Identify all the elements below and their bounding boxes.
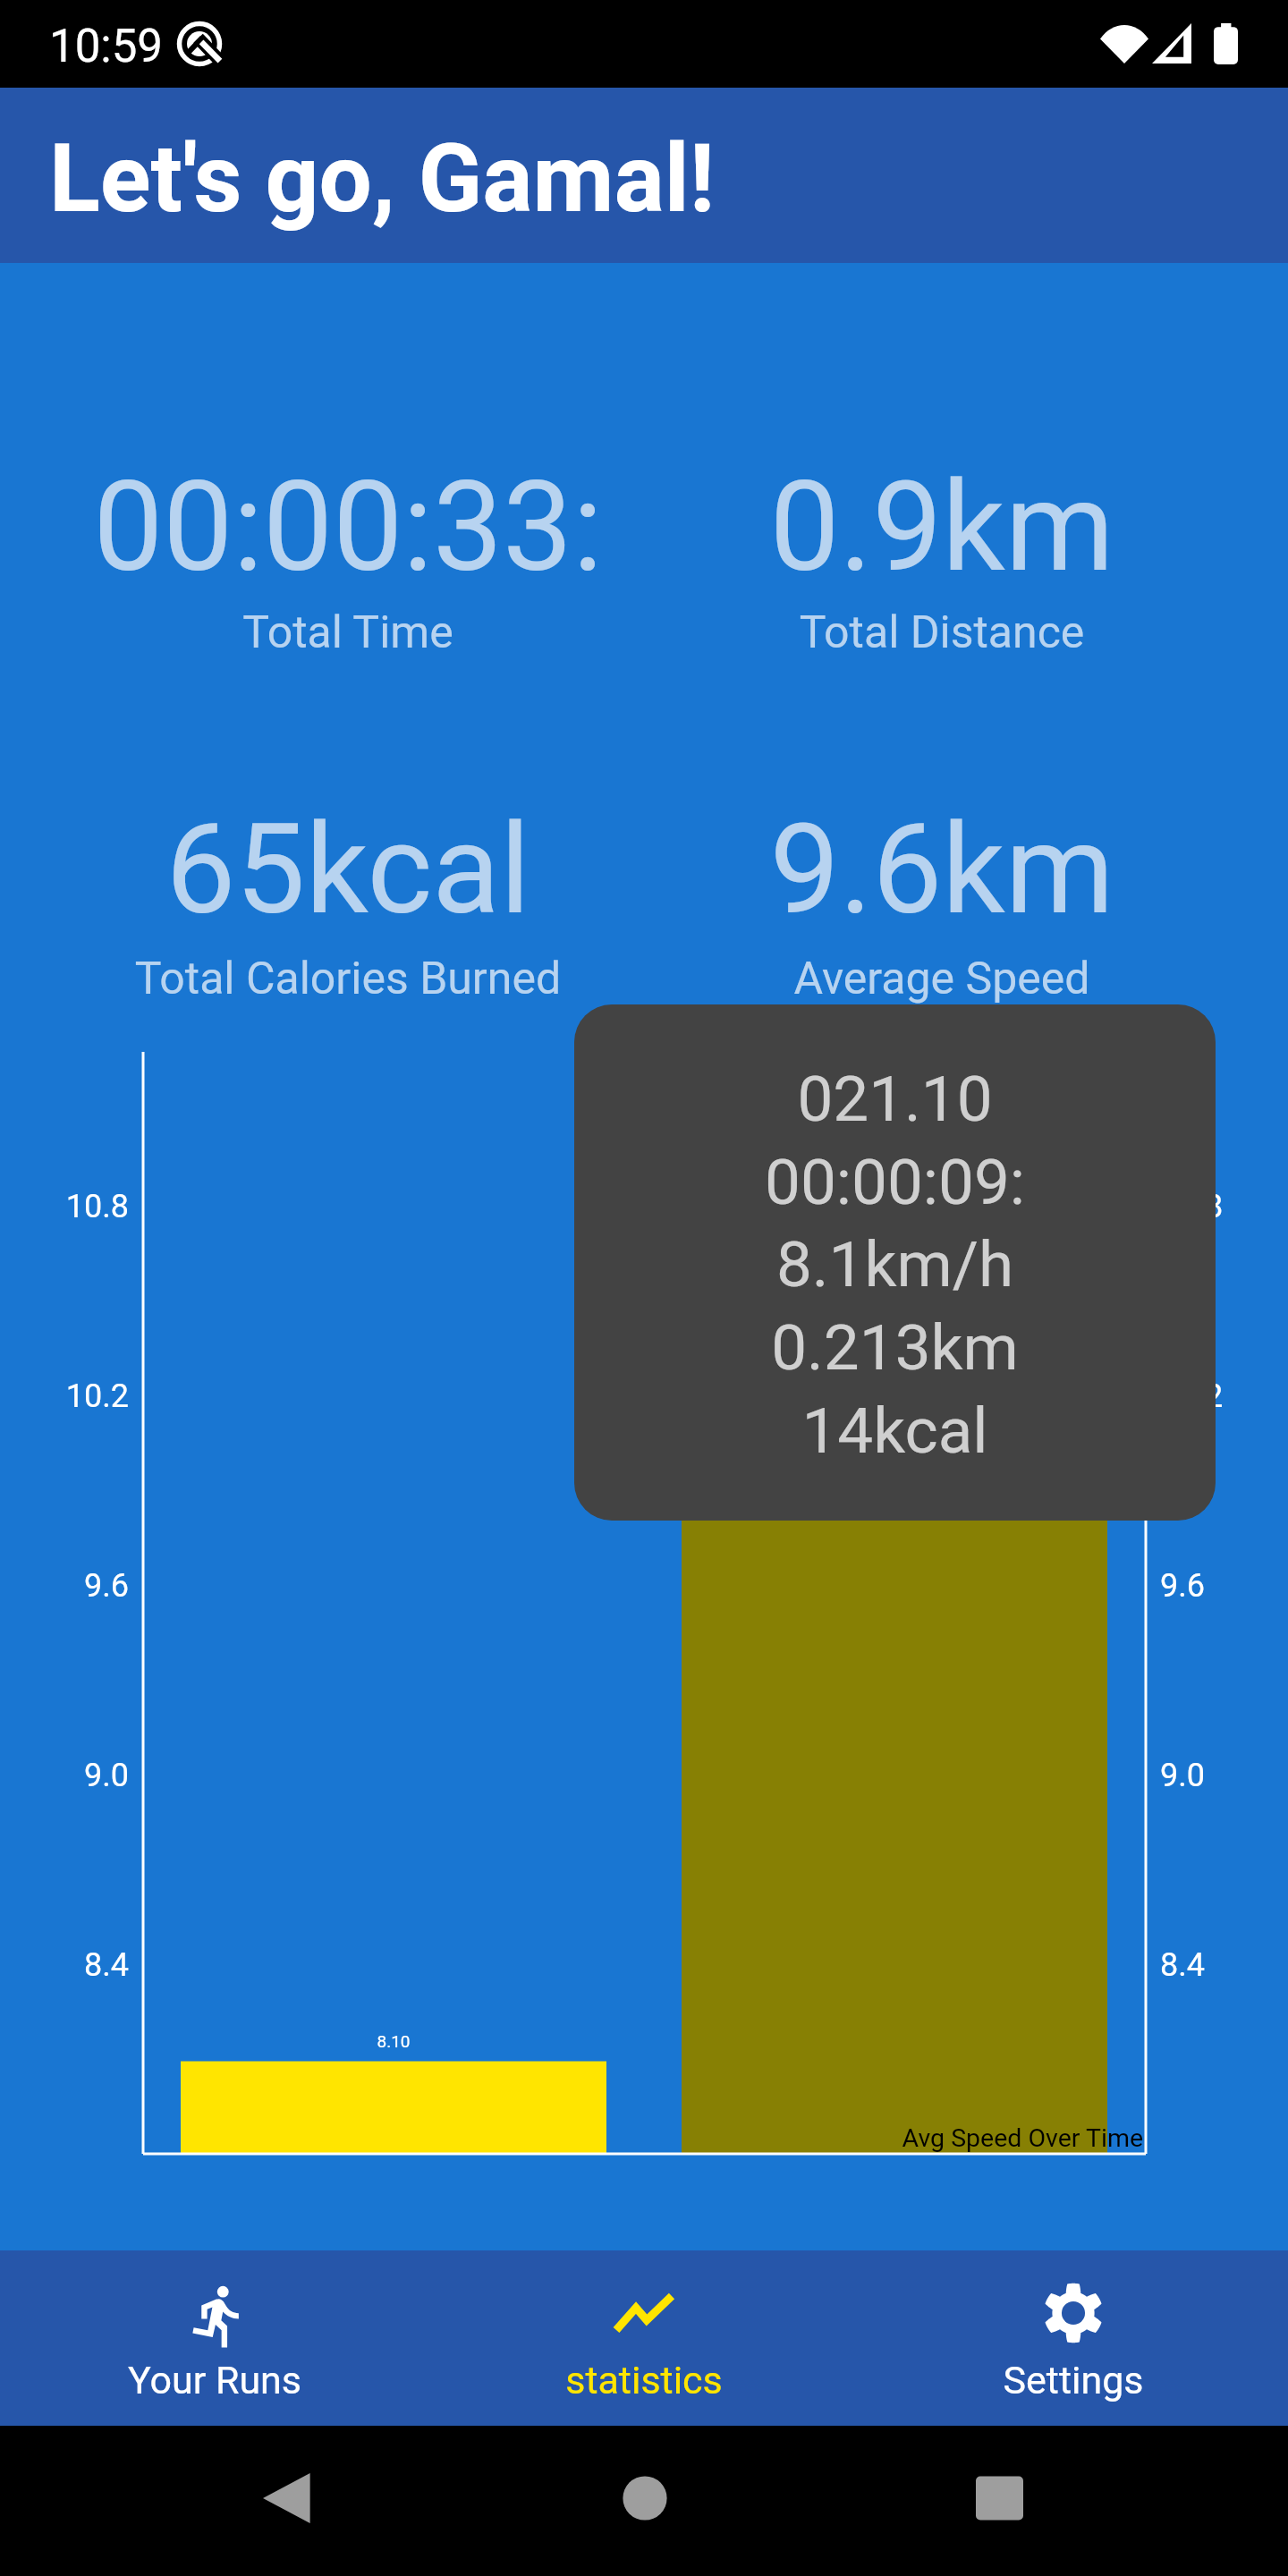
- staticText: 9.0: [0, 1757, 129, 1794]
- staticText: 9.0: [1160, 1757, 1205, 1794]
- staticText: 10.2: [0, 1377, 129, 1415]
- staticText: Total Calories Burned: [0, 953, 706, 1005]
- staticText: 8.4: [0, 1946, 129, 1984]
- staticText: Your Runs: [0, 2358, 429, 2402]
- staticText: Total Distance: [584, 606, 1288, 659]
- staticText: 00:00:33:: [0, 454, 706, 600]
- staticText: Average Speed: [584, 953, 1288, 1005]
- staticText: statistics: [429, 2358, 859, 2402]
- button[interactable]: Back: [224, 2423, 349, 2573]
- staticText: 0.213km: [574, 1310, 1216, 1385]
- staticText: 8.10: [181, 2031, 606, 2051]
- staticText: 10:59: [49, 20, 164, 73]
- staticText: Avg Speed Over Time: [0, 2123, 1143, 2153]
- staticText: 14kcal: [574, 1394, 1216, 1468]
- staticText: 8.4: [1160, 1946, 1205, 1984]
- button[interactable]: Your Runs: [0, 2250, 429, 2426]
- staticText: Let's go, Gamal!: [49, 124, 716, 234]
- staticText: 021.10: [574, 1062, 1216, 1136]
- staticText: 10.8: [0, 1188, 129, 1225]
- staticText: 0.9km: [584, 454, 1288, 600]
- button[interactable]: Settings: [859, 2250, 1288, 2426]
- button[interactable]: statistics: [429, 2250, 859, 2426]
- button[interactable]: Bar 8.1 km/h, selected: [682, 1142, 1107, 2154]
- staticText: 00:00:09:: [574, 1145, 1216, 1219]
- staticText: 10.2: [1160, 1377, 1224, 1415]
- other: Settings: [1038, 2277, 1109, 2349]
- other: Your Runs: [179, 2277, 250, 2349]
- button[interactable]: Home: [582, 2423, 708, 2573]
- staticText: Settings: [859, 2358, 1288, 2402]
- staticText: 10.8: [1160, 1188, 1224, 1225]
- staticText: 9.6: [1160, 1567, 1205, 1605]
- button[interactable]: Recent apps: [936, 2423, 1062, 2573]
- staticText: 8.1km/h: [574, 1227, 1216, 1301]
- staticText: 9.6km: [584, 797, 1288, 943]
- button[interactable]: Bar 8.10 km/h: [181, 2062, 606, 2155]
- staticText: 65kcal: [0, 797, 706, 943]
- other: statistics: [608, 2277, 680, 2349]
- staticText: 9.6: [0, 1567, 129, 1605]
- staticText: Total Time: [0, 606, 706, 659]
